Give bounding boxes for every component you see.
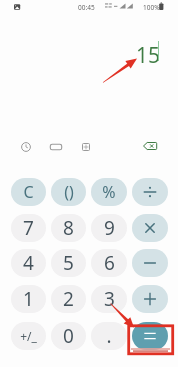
- staticText: 15: [136, 41, 161, 70]
- button[interactable]: 0: [51, 322, 86, 350]
- button[interactable]: 8: [51, 214, 86, 242]
- staticText: 9: [104, 215, 115, 241]
- staticText: 0: [63, 323, 74, 349]
- staticText: 1: [23, 286, 34, 312]
- staticText: 6: [104, 250, 115, 276]
- button[interactable]: (): [51, 178, 86, 206]
- staticText: (): [64, 181, 74, 203]
- button[interactable]: Unit converter: [75, 136, 97, 158]
- staticText: +/_: [20, 328, 37, 344]
- button[interactable]: [132, 178, 168, 206]
- button[interactable]: 9: [91, 214, 127, 242]
- button[interactable]: Backspace: [138, 134, 162, 158]
- button[interactable]: 4: [11, 249, 46, 277]
- button[interactable]: 1: [11, 285, 46, 313]
- button[interactable]: Calculator mode: [45, 136, 67, 158]
- staticText: 4: [23, 250, 34, 276]
- button[interactable]: %: [91, 178, 127, 206]
- button[interactable]: 7: [11, 214, 46, 242]
- staticText: 3: [104, 286, 115, 312]
- button[interactable]: C: [11, 178, 46, 206]
- staticText: 7: [23, 215, 34, 241]
- staticText: 8: [63, 215, 74, 241]
- button[interactable]: [132, 249, 168, 277]
- staticText: .: [106, 323, 112, 349]
- button[interactable]: 3: [91, 285, 127, 313]
- staticText: 5: [63, 250, 74, 276]
- staticText: %: [102, 181, 116, 203]
- staticText: 00:45: [78, 3, 95, 12]
- button[interactable]: History: [15, 136, 37, 158]
- button[interactable]: 5: [51, 249, 86, 277]
- button[interactable]: 6: [91, 249, 127, 277]
- staticText: 100%: [143, 3, 160, 12]
- button[interactable]: [132, 214, 168, 242]
- button[interactable]: +/_: [11, 322, 46, 350]
- button[interactable]: [132, 322, 168, 350]
- staticText: C: [23, 181, 34, 203]
- staticText: 2: [63, 286, 74, 312]
- button[interactable]: .: [91, 322, 127, 350]
- button[interactable]: 2: [51, 285, 86, 313]
- button[interactable]: [132, 285, 168, 313]
